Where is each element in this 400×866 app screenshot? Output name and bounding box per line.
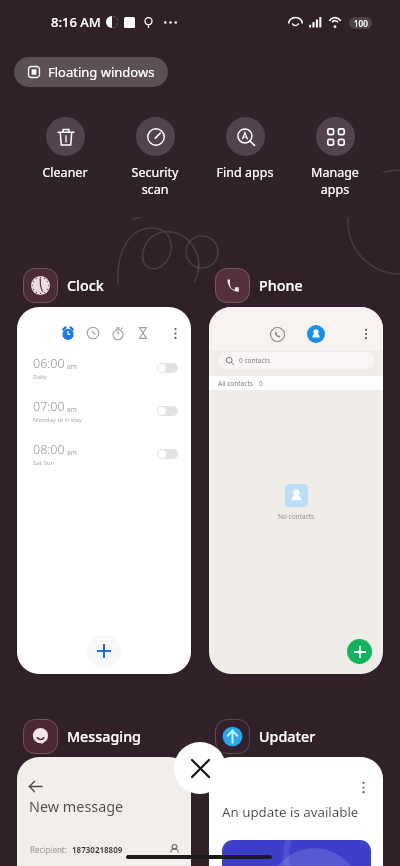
staticText: Daily: [33, 373, 47, 381]
button[interactable]: Updater: [215, 719, 316, 754]
button[interactable]: Back: [17, 757, 191, 866]
staticText: New message: [29, 797, 124, 817]
staticText: 0 contacts: [239, 356, 271, 365]
staticText: All contacts: [218, 379, 253, 388]
button[interactable]: Add alarm: [87, 634, 121, 668]
button[interactable]: Toggle alarm: [157, 449, 178, 459]
staticText: Recipient:: [30, 844, 67, 855]
staticText: An update is available: [222, 803, 359, 821]
button[interactable]: Toggle alarm: [157, 363, 178, 373]
staticText: Manage apps: [293, 164, 377, 197]
button[interactable]: Clock: [23, 268, 104, 303]
button[interactable]: Cleaner: [23, 117, 107, 181]
staticText: Floating windows: [48, 63, 155, 81]
staticText: 06:00: [33, 355, 65, 372]
staticText: 100: [354, 18, 368, 29]
button[interactable]: Messaging: [23, 719, 141, 754]
staticText: Cleaner: [23, 164, 107, 181]
button[interactable]: Manage apps: [293, 117, 377, 197]
button[interactable]: Toggle alarm: [157, 406, 178, 416]
button[interactable]: Find apps: [203, 117, 287, 181]
staticText: am: [67, 448, 77, 457]
button[interactable]: Back: [29, 780, 42, 793]
staticText: Messaging: [67, 727, 141, 746]
staticText: Sat Sun: [33, 459, 55, 467]
staticText: No contacts: [278, 512, 315, 521]
staticText: 08:00: [33, 441, 65, 458]
staticText: Clock: [67, 276, 104, 295]
button[interactable]: Phone: [215, 268, 303, 303]
button[interactable]: Floating windows: [14, 57, 168, 87]
button[interactable]: Add contact: [347, 639, 372, 664]
button[interactable]: 0 contacts: [218, 352, 375, 369]
staticText: 07:00: [33, 398, 65, 415]
button[interactable]: 0 contacts: [209, 307, 383, 674]
staticText: am: [67, 405, 77, 414]
button[interactable]: More options: [169, 327, 182, 340]
staticText: 8:16 AM: [51, 13, 101, 31]
staticText: Find apps: [203, 164, 287, 181]
staticText: Phone: [259, 276, 303, 295]
staticText: Security scan: [113, 164, 197, 197]
button[interactable]: More options: [17, 307, 191, 674]
button[interactable]: More options: [209, 757, 383, 866]
staticText: am: [67, 362, 77, 371]
staticText: 18730218809: [72, 844, 123, 855]
button[interactable]: Close all: [174, 742, 226, 794]
button[interactable]: Security scan: [113, 117, 197, 197]
staticText: 0: [259, 379, 263, 388]
staticText: Updater: [259, 727, 316, 746]
staticText: Monday to Friday: [33, 416, 83, 424]
button[interactable]: More options: [357, 781, 370, 794]
